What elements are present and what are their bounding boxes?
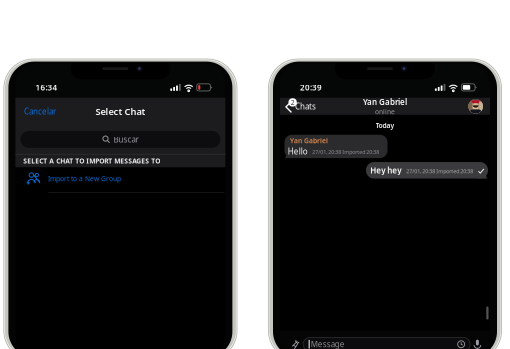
staticText: Message (311, 339, 345, 349)
staticText: 16:34 (35, 82, 57, 93)
staticText: Yan Gabriel (363, 97, 407, 107)
button[interactable]: Yan Gabriel profile (468, 99, 483, 114)
button[interactable]: Record voice message (470, 339, 485, 349)
button[interactable]: Message (303, 337, 470, 349)
staticText: Buscar (113, 134, 138, 145)
staticText: 27/01, 20:38 Imported 20:38 (406, 167, 473, 175)
staticText: Chats (295, 101, 316, 112)
staticText: Today (375, 121, 394, 130)
button[interactable]: Buscar (20, 131, 220, 148)
staticText: Hey hey (370, 165, 401, 176)
button[interactable]: Attach (285, 339, 303, 349)
staticText: Cancelar (24, 106, 56, 117)
staticText: 27/01, 20:38 Imported 20:38 (312, 148, 379, 155)
button[interactable]: 2 (283, 98, 320, 114)
staticText: Select Chat (95, 105, 145, 117)
staticText: Hello (288, 146, 308, 157)
staticText: Import to a New Group (48, 174, 121, 183)
staticText: SELECT A CHAT TO IMPORT MESSAGES TO (23, 156, 160, 165)
staticText: 2 (291, 98, 295, 107)
staticText: 20:39 (300, 82, 322, 93)
button[interactable]: Import to a New Group (15, 167, 225, 192)
staticText: online (375, 107, 395, 116)
staticText: Yan Gabriel (290, 136, 328, 145)
button[interactable]: Cancelar (17, 102, 63, 121)
